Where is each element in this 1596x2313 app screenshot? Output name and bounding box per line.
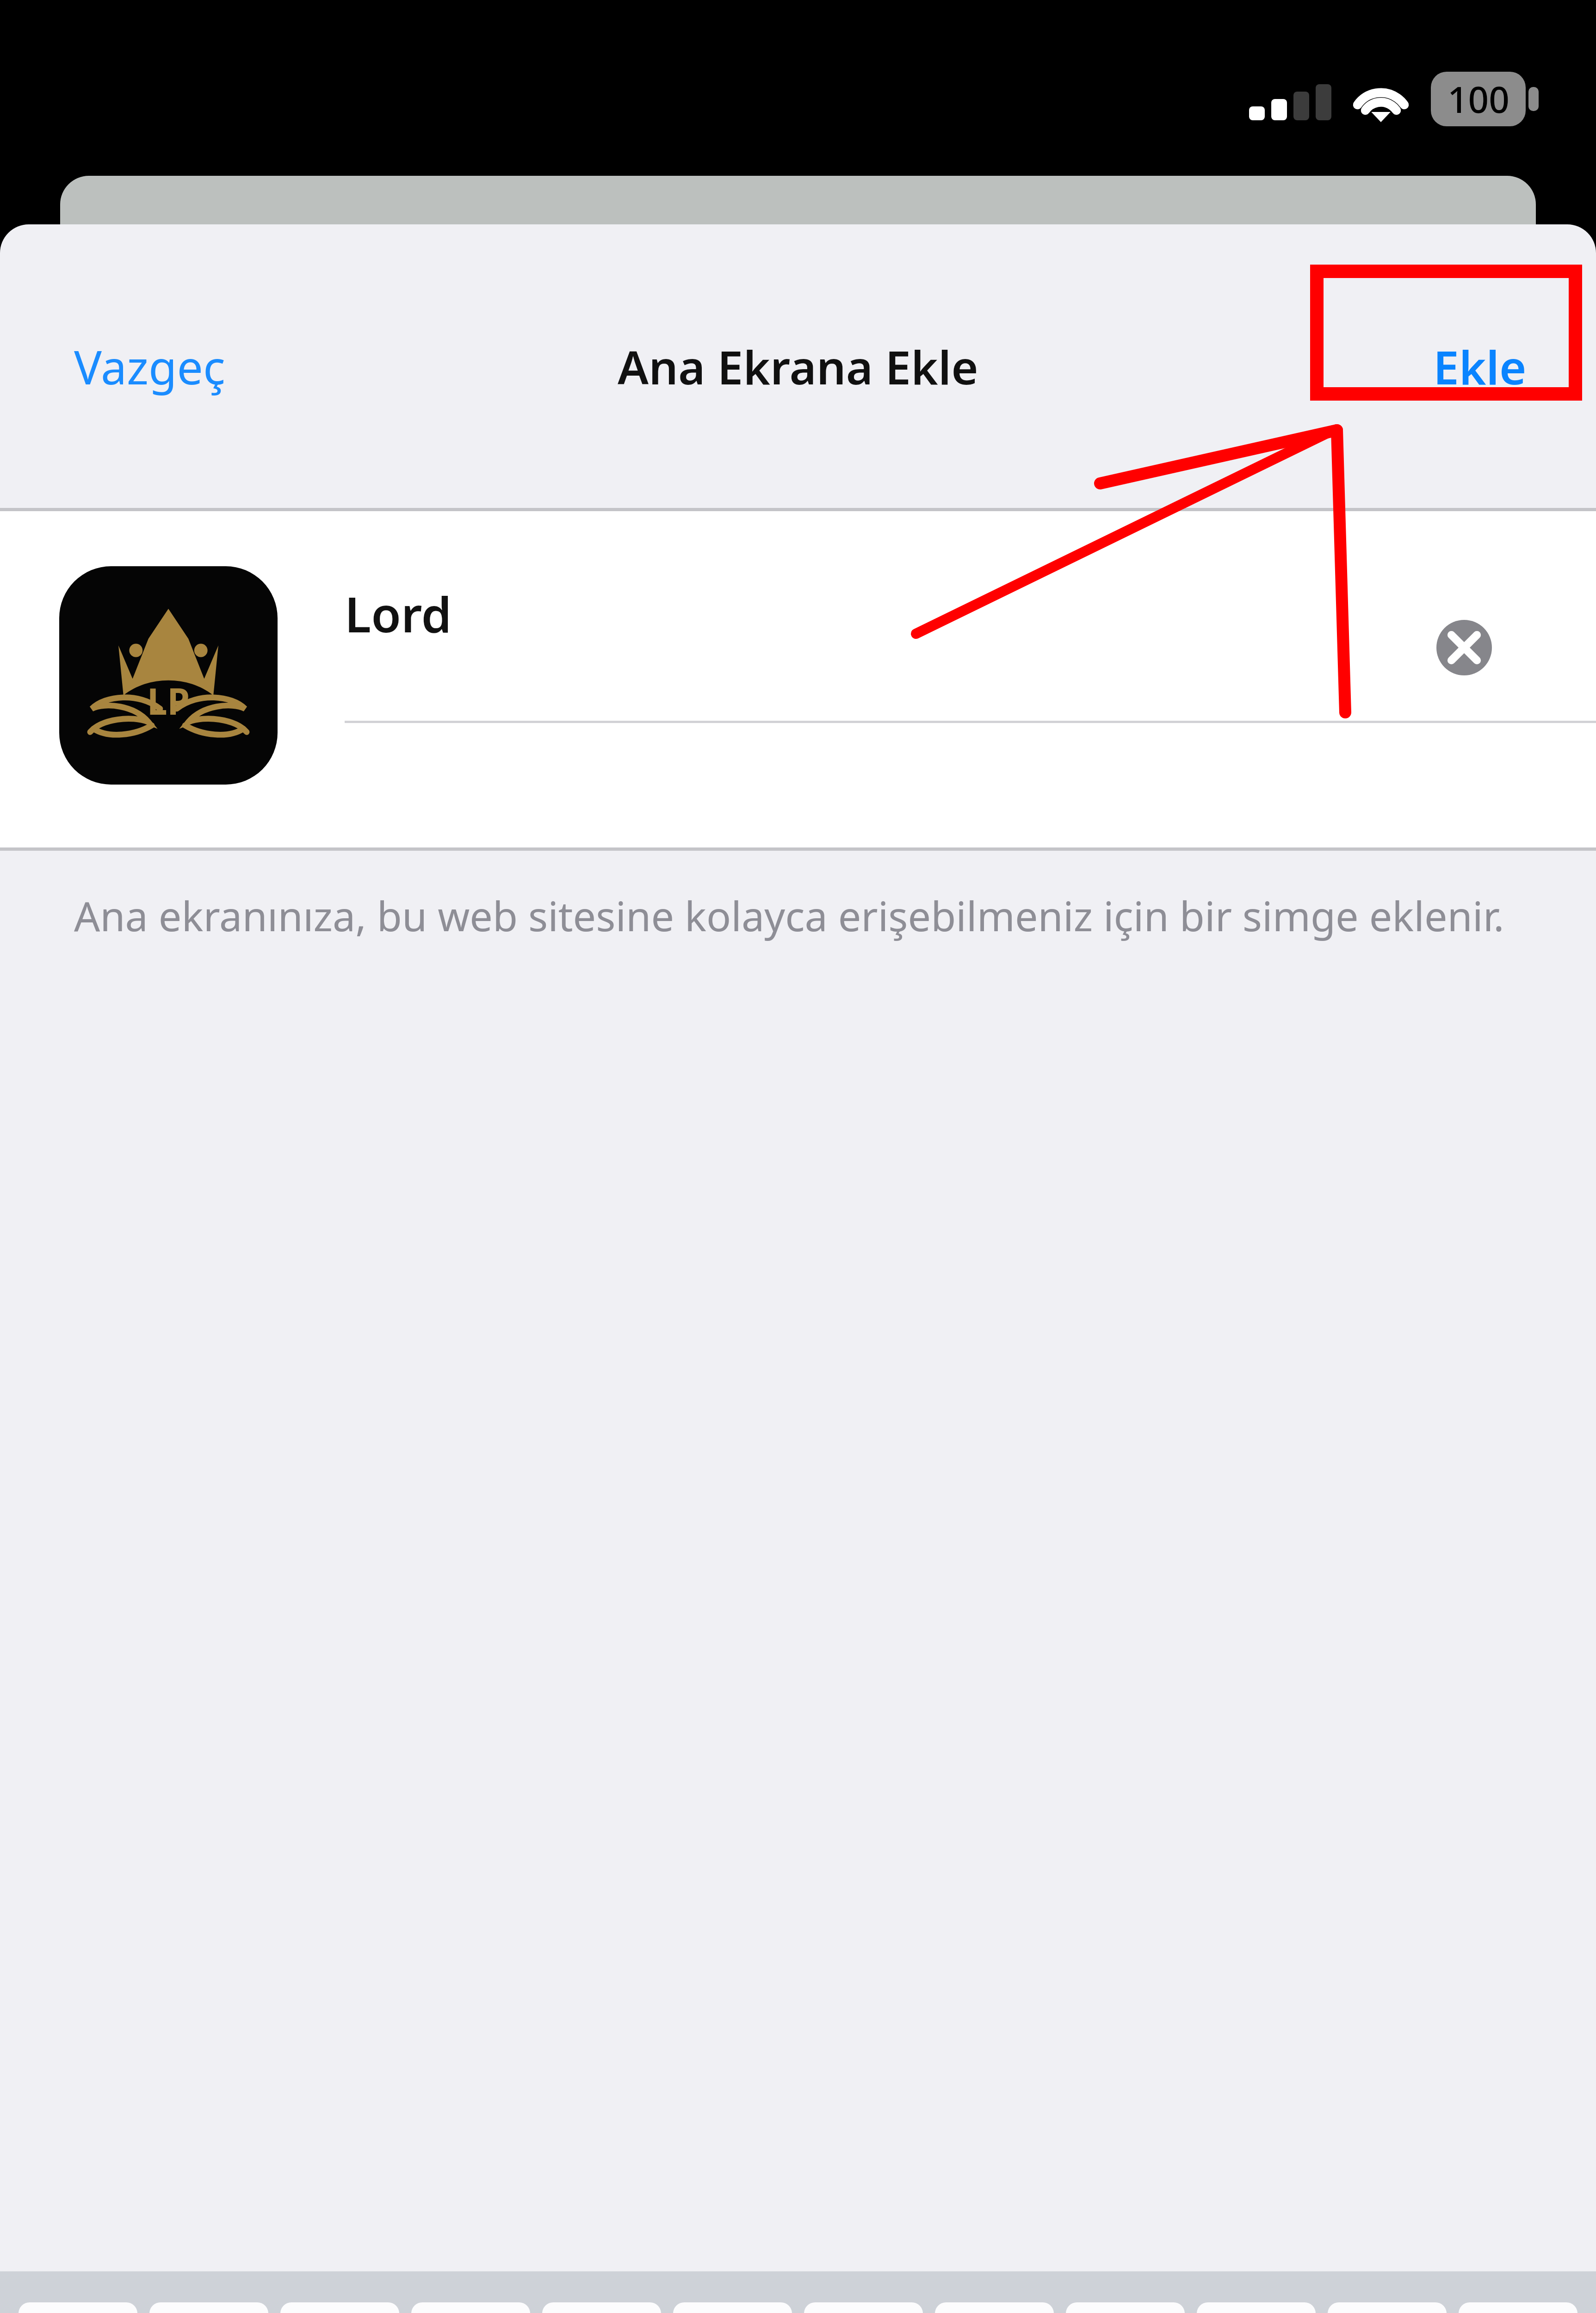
- button[interactable]: u: [804, 2302, 923, 2313]
- staticText: Ekle: [1433, 335, 1527, 398]
- button[interactable]: t: [542, 2302, 661, 2313]
- button[interactable]: q: [19, 2302, 137, 2313]
- staticText: Ana ekranınıza, bu web sitesine kolayca …: [74, 888, 1522, 943]
- button[interactable]: p: [1197, 2302, 1316, 2313]
- staticText: Vazgeç: [74, 335, 225, 398]
- button[interactable]: Lord uygulama simgesi: [59, 566, 278, 785]
- button[interactable]: y: [673, 2302, 792, 2313]
- button[interactable]: ı: [935, 2302, 1054, 2313]
- staticText: Ana Ekrana Ekle: [618, 335, 978, 398]
- staticText: 100: [1448, 74, 1509, 124]
- button[interactable]: Ekle: [1415, 321, 1545, 412]
- button[interactable]: o: [1066, 2302, 1185, 2313]
- button[interactable]: Vazgeç: [56, 321, 244, 412]
- staticText: LP: [147, 676, 190, 725]
- button[interactable]: r: [411, 2302, 530, 2313]
- button[interactable]: ğ: [1328, 2302, 1447, 2313]
- button[interactable]: w: [149, 2302, 268, 2313]
- button[interactable]: Temizle: [1434, 618, 1494, 678]
- staticText: Lord: [345, 581, 452, 647]
- button[interactable]: e: [280, 2302, 399, 2313]
- button[interactable]: ü: [1459, 2302, 1577, 2313]
